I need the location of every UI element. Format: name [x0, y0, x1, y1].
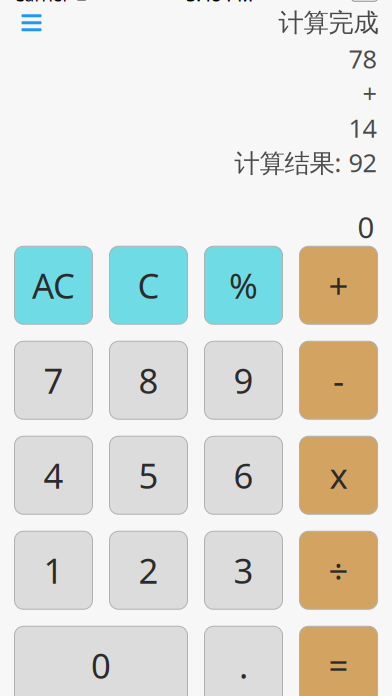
- staticText: +: [362, 76, 376, 110]
- staticText: Carrier: [13, 0, 69, 6]
- button[interactable]: C: [109, 246, 187, 324]
- staticText: .: [239, 642, 248, 688]
- staticText: C: [137, 262, 159, 308]
- button[interactable]: 9: [204, 341, 282, 419]
- button[interactable]: x: [299, 436, 377, 514]
- button[interactable]: 2: [109, 531, 187, 609]
- staticText: %: [229, 262, 258, 308]
- button[interactable]: -: [299, 341, 377, 419]
- button[interactable]: Menu: [13, 6, 49, 40]
- staticText: -: [333, 357, 344, 403]
- staticText: 5: [138, 452, 158, 498]
- staticText: ÷: [328, 547, 348, 593]
- staticText: AC: [32, 262, 75, 308]
- button[interactable]: =: [299, 626, 377, 696]
- staticText: 9: [233, 357, 253, 403]
- button[interactable]: 3: [204, 531, 282, 609]
- staticText: =: [328, 642, 348, 688]
- staticText: 4: [43, 452, 63, 498]
- staticText: 14: [348, 111, 376, 145]
- button[interactable]: 6: [204, 436, 282, 514]
- button[interactable]: +: [299, 246, 377, 324]
- button[interactable]: %: [204, 246, 282, 324]
- button[interactable]: 5: [109, 436, 187, 514]
- button[interactable]: .: [204, 626, 282, 696]
- staticText: 3:48 PM: [186, 0, 253, 6]
- staticText: 7: [43, 357, 63, 403]
- button[interactable]: 8: [109, 341, 187, 419]
- staticText: 1: [43, 547, 63, 593]
- staticText: x: [329, 452, 347, 498]
- staticText: 6: [233, 452, 253, 498]
- staticText: 0: [357, 207, 374, 246]
- button[interactable]: 4: [14, 436, 92, 514]
- button[interactable]: ÷: [299, 531, 377, 609]
- button[interactable]: 0: [14, 626, 187, 696]
- staticText: 3: [233, 547, 253, 593]
- staticText: +: [328, 262, 348, 308]
- button[interactable]: 1: [14, 531, 92, 609]
- staticText: 2: [138, 547, 158, 593]
- staticText: 计算结果: 92: [234, 146, 376, 179]
- staticText: 78: [348, 42, 376, 75]
- staticText: 8: [138, 357, 158, 403]
- staticText: 0: [91, 642, 111, 688]
- staticText: 计算完成: [278, 7, 378, 38]
- button[interactable]: AC: [14, 246, 92, 324]
- button[interactable]: 7: [14, 341, 92, 419]
